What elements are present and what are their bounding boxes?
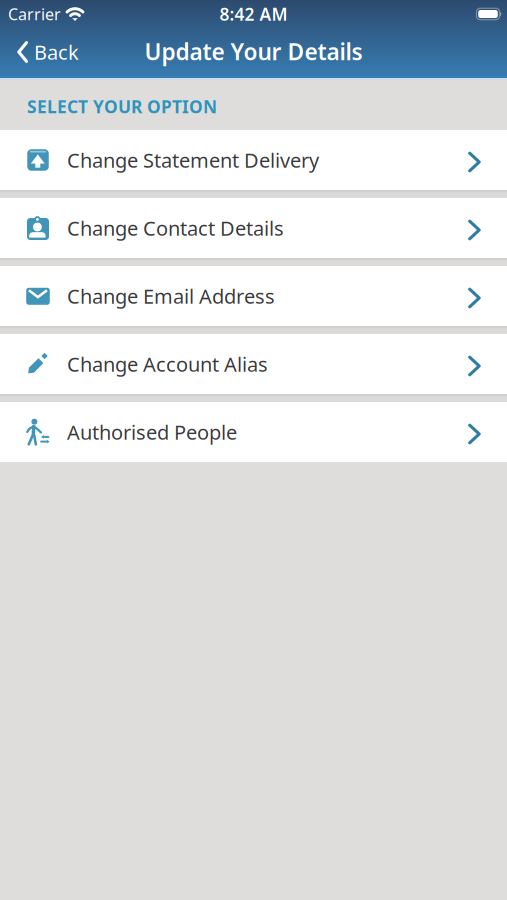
- staticText: Carrier: [8, 3, 61, 25]
- button[interactable]: Change Statement Delivery: [0, 130, 507, 190]
- button[interactable]: Back: [0, 31, 79, 73]
- staticText: Change Statement Delivery: [67, 147, 319, 173]
- button[interactable]: Change Email Address: [0, 266, 507, 326]
- staticText: 8:42 AM: [219, 2, 287, 25]
- button[interactable]: Authorised People: [0, 402, 507, 462]
- staticText: Change Email Address: [67, 283, 275, 309]
- button[interactable]: Change Account Alias: [0, 334, 507, 394]
- staticText: Authorised People: [67, 419, 237, 445]
- staticText: SELECT YOUR OPTION: [27, 95, 217, 118]
- staticText: Change Account Alias: [67, 351, 268, 377]
- staticText: Change Contact Details: [67, 215, 284, 241]
- staticText: Update Your Details: [144, 36, 362, 66]
- button[interactable]: Change Contact Details: [0, 198, 507, 258]
- staticText: Back: [34, 39, 79, 65]
